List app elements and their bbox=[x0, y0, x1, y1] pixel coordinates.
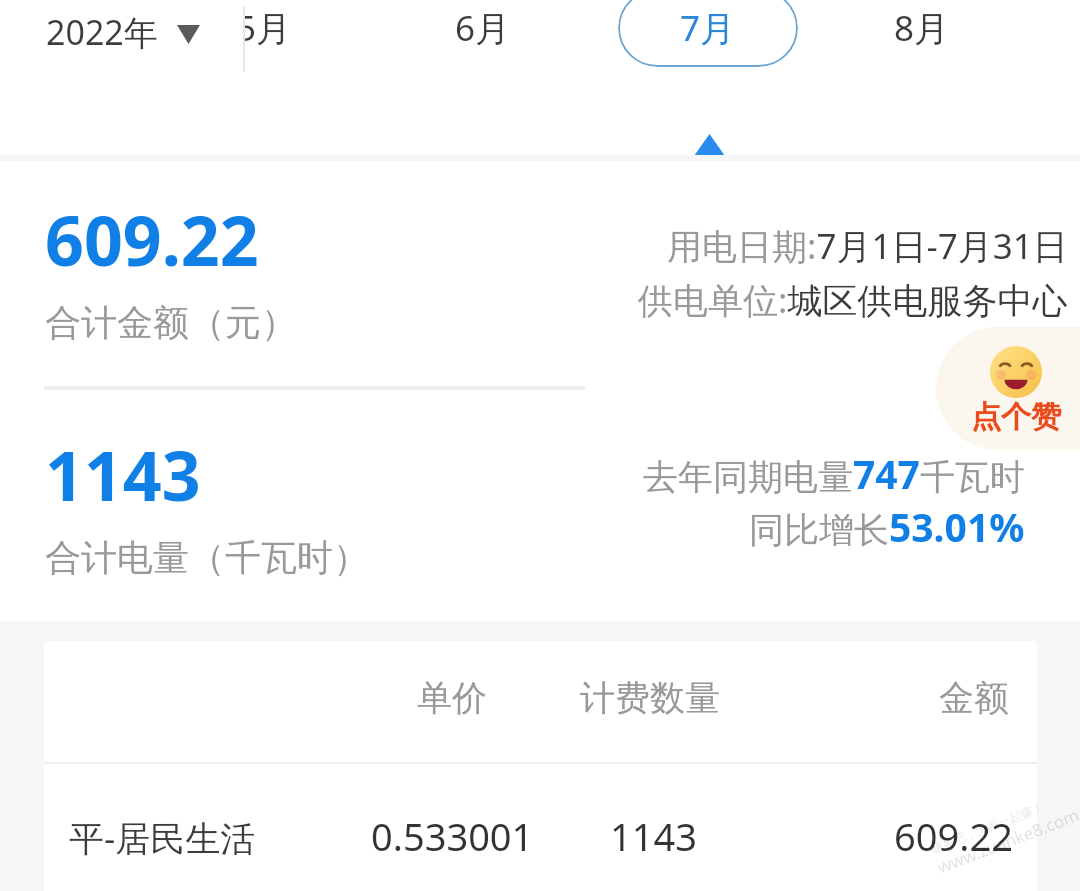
staticText: 609.22 bbox=[45, 193, 259, 286]
staticText: 赚客吧，大家一起赚！ bbox=[928, 799, 1046, 856]
staticText: 计费数量 bbox=[580, 676, 720, 720]
staticText: 单价 bbox=[417, 676, 487, 720]
staticText: 0.533001 bbox=[371, 810, 534, 862]
staticText: 2022年 bbox=[46, 9, 158, 55]
button[interactable]: 8月 bbox=[832, 0, 1012, 60]
staticText: 同比增长53.01% bbox=[749, 500, 1025, 553]
button[interactable]: 6月 bbox=[393, 0, 573, 60]
staticText: 7月 bbox=[680, 4, 736, 52]
staticText: 5月 bbox=[245, 4, 292, 52]
staticText: 合计电量（千瓦时） bbox=[45, 535, 369, 580]
button[interactable]: 7月 bbox=[618, 0, 798, 67]
staticText: 用电日期:7月1日-7月31日 bbox=[667, 222, 1068, 270]
button[interactable]: 5月 bbox=[245, 0, 354, 60]
staticText: www.zuanke8.com bbox=[934, 803, 1080, 878]
staticText: 合计金额（元） bbox=[45, 300, 297, 345]
staticText: 1143 bbox=[610, 810, 697, 862]
staticText: 去年同期电量747千瓦时 bbox=[643, 447, 1025, 500]
staticText: 金额 bbox=[939, 676, 1009, 720]
staticText: 平-居民生活 bbox=[69, 814, 256, 862]
staticText: 8月 bbox=[894, 4, 950, 52]
staticText: 6月 bbox=[455, 4, 511, 52]
staticText: 点个赞 bbox=[971, 398, 1061, 436]
button[interactable]: Like bbox=[936, 327, 1080, 450]
staticText: 609.22 bbox=[894, 810, 1013, 862]
staticText: 供电单位:城区供电服务中心 bbox=[638, 276, 1068, 324]
button[interactable]: 2022年 bbox=[0, 0, 244, 64]
staticText: 1143 bbox=[45, 428, 201, 521]
